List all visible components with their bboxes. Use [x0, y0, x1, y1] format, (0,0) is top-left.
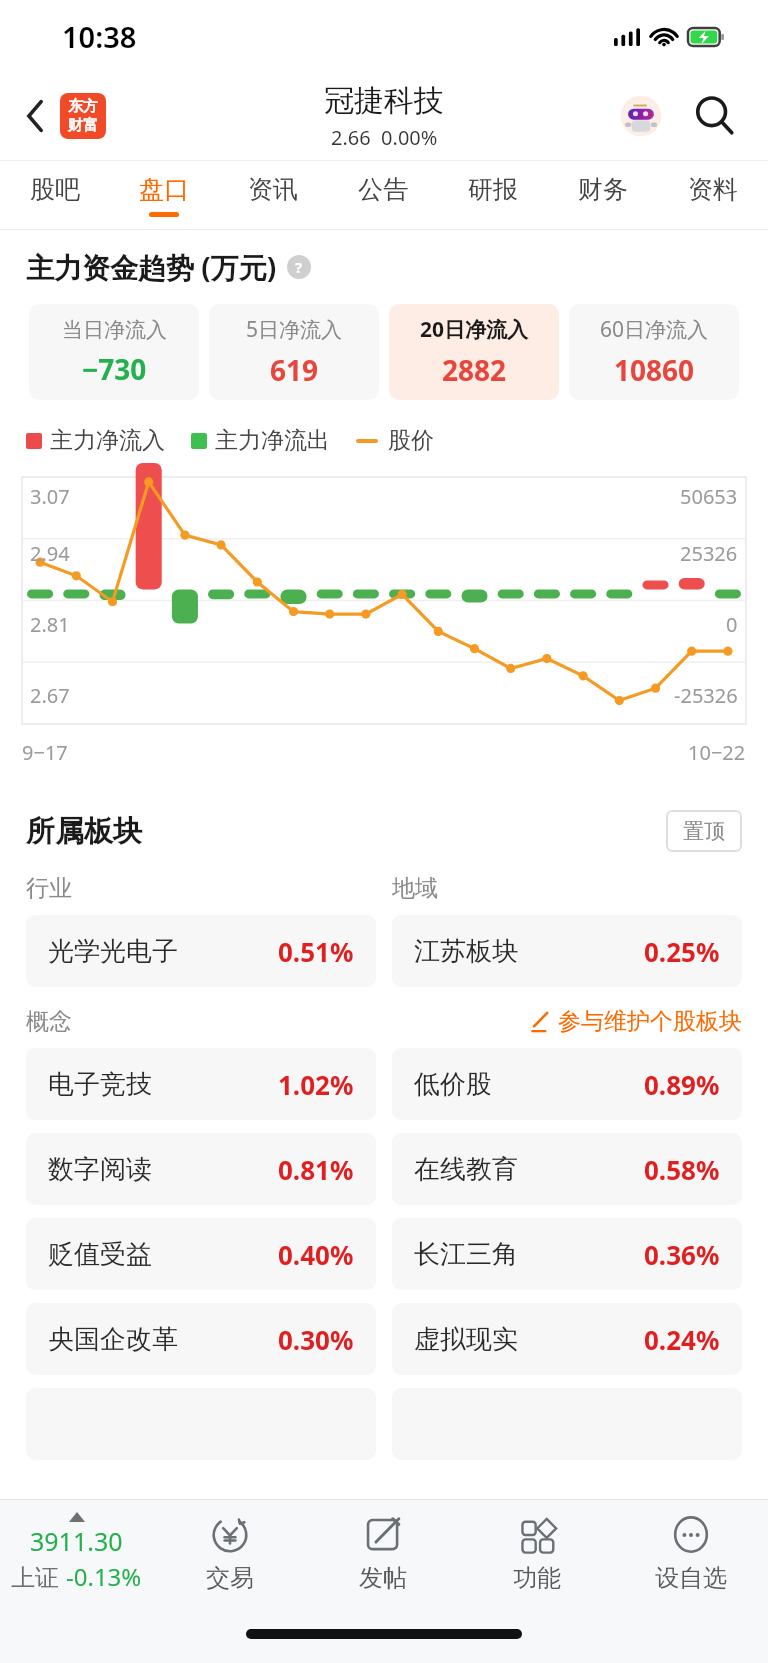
- button[interactable]: 光学光电子: [26, 915, 376, 987]
- button[interactable]: 资料: [658, 161, 768, 229]
- staticText: 交易: [206, 1563, 254, 1593]
- staticText: 60日净流入: [600, 315, 709, 344]
- staticText: 0.40%: [278, 1237, 354, 1272]
- button[interactable]: 贬值受益: [26, 1218, 376, 1290]
- staticText: 公告: [358, 174, 408, 205]
- staticText: 央国企改革: [48, 1323, 178, 1356]
- button[interactable]: 研报: [438, 161, 548, 229]
- staticText: 行业: [26, 874, 72, 903]
- staticText: 贬值受益: [48, 1238, 152, 1271]
- staticText: 0.36%: [644, 1237, 720, 1272]
- button[interactable]: 资讯: [218, 161, 328, 229]
- button[interactable]: 在线教育: [392, 1133, 742, 1205]
- staticText: 财务: [578, 174, 628, 205]
- staticText: 设自选: [655, 1563, 727, 1593]
- button[interactable]: 5日净流入: [209, 304, 379, 400]
- button[interactable]: 长江三角: [392, 1218, 742, 1290]
- staticText: 9−17: [22, 739, 68, 766]
- staticText: 功能: [513, 1563, 561, 1593]
- staticText: 10:38: [62, 17, 137, 56]
- button[interactable]: 虚拟现实: [392, 1303, 742, 1375]
- button[interactable]: 交易: [153, 1500, 306, 1605]
- staticText: 0.24%: [644, 1322, 720, 1357]
- staticText: 资讯: [248, 174, 298, 205]
- button[interactable]: Back: [18, 87, 112, 145]
- staticText: 3911.30: [30, 1524, 123, 1558]
- button[interactable]: 当日净流入: [29, 304, 199, 400]
- button[interactable]: 公告: [328, 161, 438, 229]
- staticText: 研报: [468, 174, 518, 205]
- button[interactable]: AI assistant: [614, 89, 668, 143]
- staticText: 0.58%: [644, 1152, 720, 1187]
- staticText: 50653: [680, 483, 738, 510]
- staticText: -0.13%: [66, 1560, 142, 1593]
- staticText: 财富: [68, 116, 98, 135]
- button[interactable]: 财务: [548, 161, 658, 229]
- staticText: 所属板块: [26, 813, 142, 850]
- staticText: 1.02%: [278, 1067, 354, 1102]
- staticText: 虚拟现实: [414, 1323, 518, 1356]
- staticText: 10−22: [688, 739, 746, 766]
- staticText: 资料: [688, 174, 738, 205]
- staticText: 2.66 0.00%: [331, 124, 438, 151]
- button[interactable]: 低价股: [392, 1048, 742, 1120]
- button[interactable]: Help: [287, 255, 311, 279]
- staticText: 数字阅读: [48, 1153, 152, 1186]
- staticText: ?: [295, 257, 303, 277]
- staticText: 电子竞技: [48, 1068, 152, 1101]
- staticText: 0.25%: [644, 934, 720, 969]
- staticText: 江苏板块: [414, 935, 518, 968]
- staticText: 地域: [392, 874, 438, 903]
- staticText: 主力资金趋势 (万元): [26, 248, 277, 286]
- button[interactable]: 央国企改革: [26, 1303, 376, 1375]
- staticText: 0.51%: [278, 934, 354, 969]
- staticText: 619: [270, 351, 319, 389]
- button[interactable]: 功能: [460, 1500, 614, 1605]
- staticText: 0.30%: [278, 1322, 354, 1357]
- staticText: 发帖: [359, 1563, 407, 1593]
- button[interactable]: Search: [688, 89, 742, 143]
- staticText: 25326: [680, 540, 738, 567]
- button[interactable]: 3911.30: [0, 1500, 153, 1605]
- button[interactable]: 20日净流入: [389, 304, 559, 400]
- button[interactable]: 盘口: [109, 161, 218, 229]
- button[interactable]: 股吧: [0, 161, 109, 229]
- staticText: 2882: [442, 351, 507, 389]
- staticText: 0.89%: [644, 1067, 720, 1102]
- staticText: 3.07: [30, 483, 70, 510]
- button[interactable]: 设自选: [614, 1500, 768, 1605]
- staticText: 股吧: [30, 174, 80, 205]
- staticText: 盘口: [139, 174, 189, 205]
- staticText: 股价: [388, 426, 434, 455]
- staticText: 冠捷科技: [324, 82, 444, 120]
- staticText: -25326: [674, 682, 738, 709]
- staticText: 2.67: [30, 682, 70, 709]
- staticText: 参与维护个股板块: [558, 1007, 742, 1036]
- staticText: 10860: [614, 351, 695, 389]
- staticText: 置顶: [683, 818, 725, 844]
- staticText: 低价股: [414, 1068, 492, 1101]
- staticText: 0: [726, 611, 738, 638]
- staticText: 2.94: [30, 540, 70, 567]
- button[interactable]: 数字阅读: [26, 1133, 376, 1205]
- staticText: 东方: [68, 97, 98, 116]
- staticText: 0.81%: [278, 1152, 354, 1187]
- button[interactable]: 电子竞技: [26, 1048, 376, 1120]
- staticText: −730: [82, 350, 147, 388]
- staticText: 2.81: [30, 611, 70, 638]
- button[interactable]: 发帖: [306, 1500, 460, 1605]
- staticText: 主力净流入: [50, 426, 165, 455]
- staticText: 20日净流入: [420, 315, 529, 344]
- button[interactable]: 参与维护个股板块: [528, 1007, 742, 1036]
- button[interactable]: 60日净流入: [569, 304, 739, 400]
- staticText: 概念: [26, 1007, 72, 1036]
- staticText: 上证: [11, 1560, 66, 1593]
- button[interactable]: 置顶: [666, 810, 742, 852]
- staticText: 主力净流出: [215, 426, 330, 455]
- staticText: 在线教育: [414, 1153, 518, 1186]
- button[interactable]: 江苏板块: [392, 915, 742, 987]
- staticText: 长江三角: [414, 1238, 518, 1271]
- staticText: 5日净流入: [246, 315, 343, 344]
